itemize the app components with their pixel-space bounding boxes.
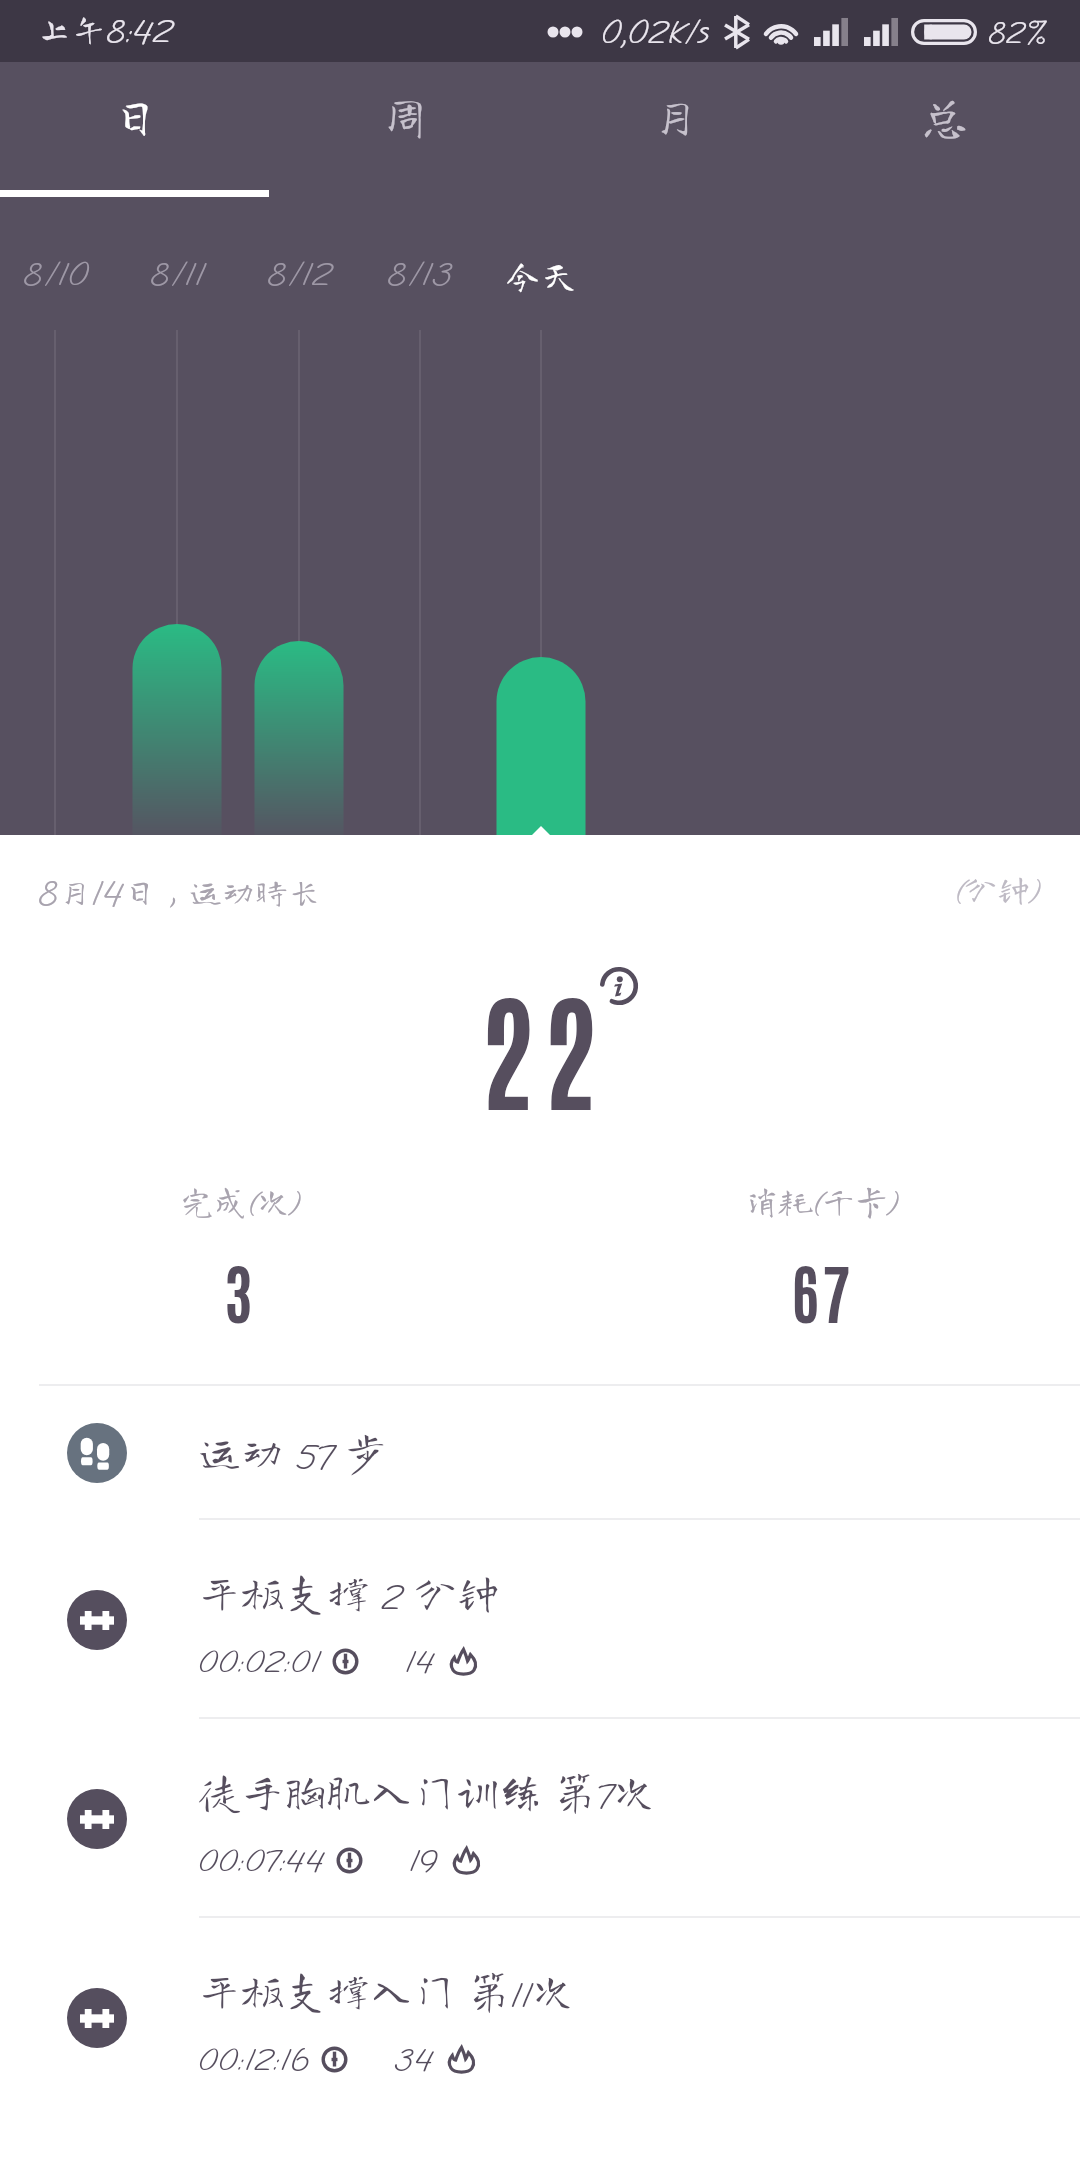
staticText: 3 bbox=[225, 1249, 257, 1331]
button[interactable]: 消耗(千卡) bbox=[653, 1175, 993, 1335]
button[interactable]: 完成(次) bbox=[71, 1175, 411, 1335]
staticText: 平板支撑入门 第11次 bbox=[198, 1968, 575, 2018]
staticText: 完成(次) bbox=[181, 1183, 302, 1223]
staticText: 00:12:16 bbox=[198, 2038, 310, 2080]
button[interactable]: 总 bbox=[810, 62, 1080, 202]
button[interactable]: 平板支撑 2 分钟 bbox=[0, 1520, 1080, 1719]
staticText: 消耗(千卡) bbox=[746, 1183, 900, 1223]
button[interactable]: 徒手胸肌入门训练 第7次 bbox=[0, 1719, 1080, 1918]
staticText: 8/10 bbox=[23, 252, 89, 296]
button[interactable]: 平板支撑入门 第11次 bbox=[0, 1918, 1080, 2117]
staticText: 今天 bbox=[504, 256, 578, 293]
staticText: 0,02K/s bbox=[601, 10, 711, 53]
button[interactable]: 日 bbox=[0, 62, 270, 202]
staticText: 8/11 bbox=[150, 252, 205, 296]
staticText: 8/12 bbox=[267, 252, 332, 296]
staticText: 徒手胸肌入门训练 第7次 bbox=[198, 1769, 656, 1819]
staticText: 上午8:42 bbox=[38, 9, 173, 53]
staticText: 月 bbox=[651, 92, 700, 140]
staticText: 14 bbox=[405, 1640, 435, 1682]
staticText: 34 bbox=[394, 2038, 433, 2080]
staticText: 19 bbox=[409, 1839, 438, 1881]
staticText: 日 bbox=[111, 92, 160, 140]
staticText: 82% bbox=[988, 12, 1048, 52]
button[interactable]: 月 bbox=[540, 62, 810, 202]
staticText: 00:02:01 bbox=[198, 1640, 321, 1682]
button[interactable]: 运动 57 步 bbox=[0, 1386, 1080, 1519]
staticText: 运动 57 步 bbox=[198, 1430, 388, 1480]
staticText: (分钟) bbox=[954, 871, 1042, 911]
button[interactable]: 周 bbox=[270, 62, 540, 202]
staticText: 平板支撑 2 分钟 bbox=[198, 1570, 500, 1620]
staticText: 00:07:44 bbox=[198, 1839, 325, 1881]
staticText: 8/13 bbox=[387, 252, 453, 296]
staticText: 22 bbox=[480, 965, 606, 1125]
staticText: 总 bbox=[921, 92, 970, 140]
staticText: 67 bbox=[792, 1249, 855, 1331]
staticText: 周 bbox=[381, 92, 430, 140]
button[interactable]: 说明 bbox=[599, 966, 639, 1006]
staticText: 8月14日，运动时长 bbox=[38, 871, 322, 916]
